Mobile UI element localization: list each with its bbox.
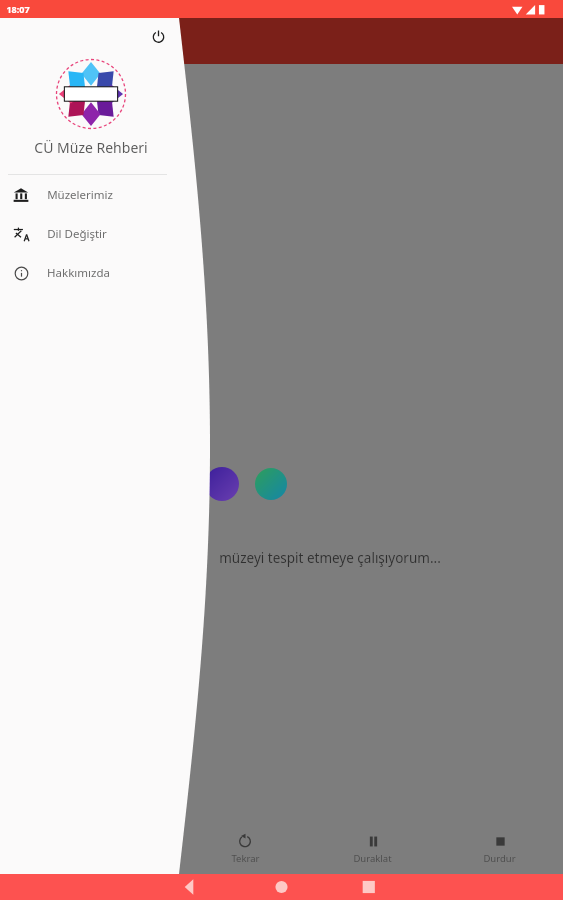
staticText: Müzelerimiz: [47, 187, 113, 203]
staticText: Tekrar: [231, 852, 260, 865]
button[interactable]: Müzelerimiz: [0, 175, 181, 214]
button[interactable]: Durdur: [436, 824, 563, 874]
button[interactable]: Çıkış: [145, 23, 171, 49]
staticText: 18:07: [6, 3, 30, 15]
button[interactable]: Tekrar: [181, 824, 309, 874]
button[interactable]: Dil Değiştir: [0, 214, 181, 253]
button[interactable]: Duraklat: [309, 824, 436, 874]
staticText: Dil Değiştir: [47, 226, 107, 242]
staticText: Durdur: [483, 852, 516, 865]
staticText: CÜ Müze Rehberi: [34, 138, 148, 157]
staticText: Duraklat: [353, 852, 392, 865]
staticText: müzeyi tespit etmeye çalışıyorum...: [219, 549, 441, 567]
staticText: Hakkımızda: [47, 265, 110, 281]
button[interactable]: Hakkımızda: [0, 253, 181, 292]
